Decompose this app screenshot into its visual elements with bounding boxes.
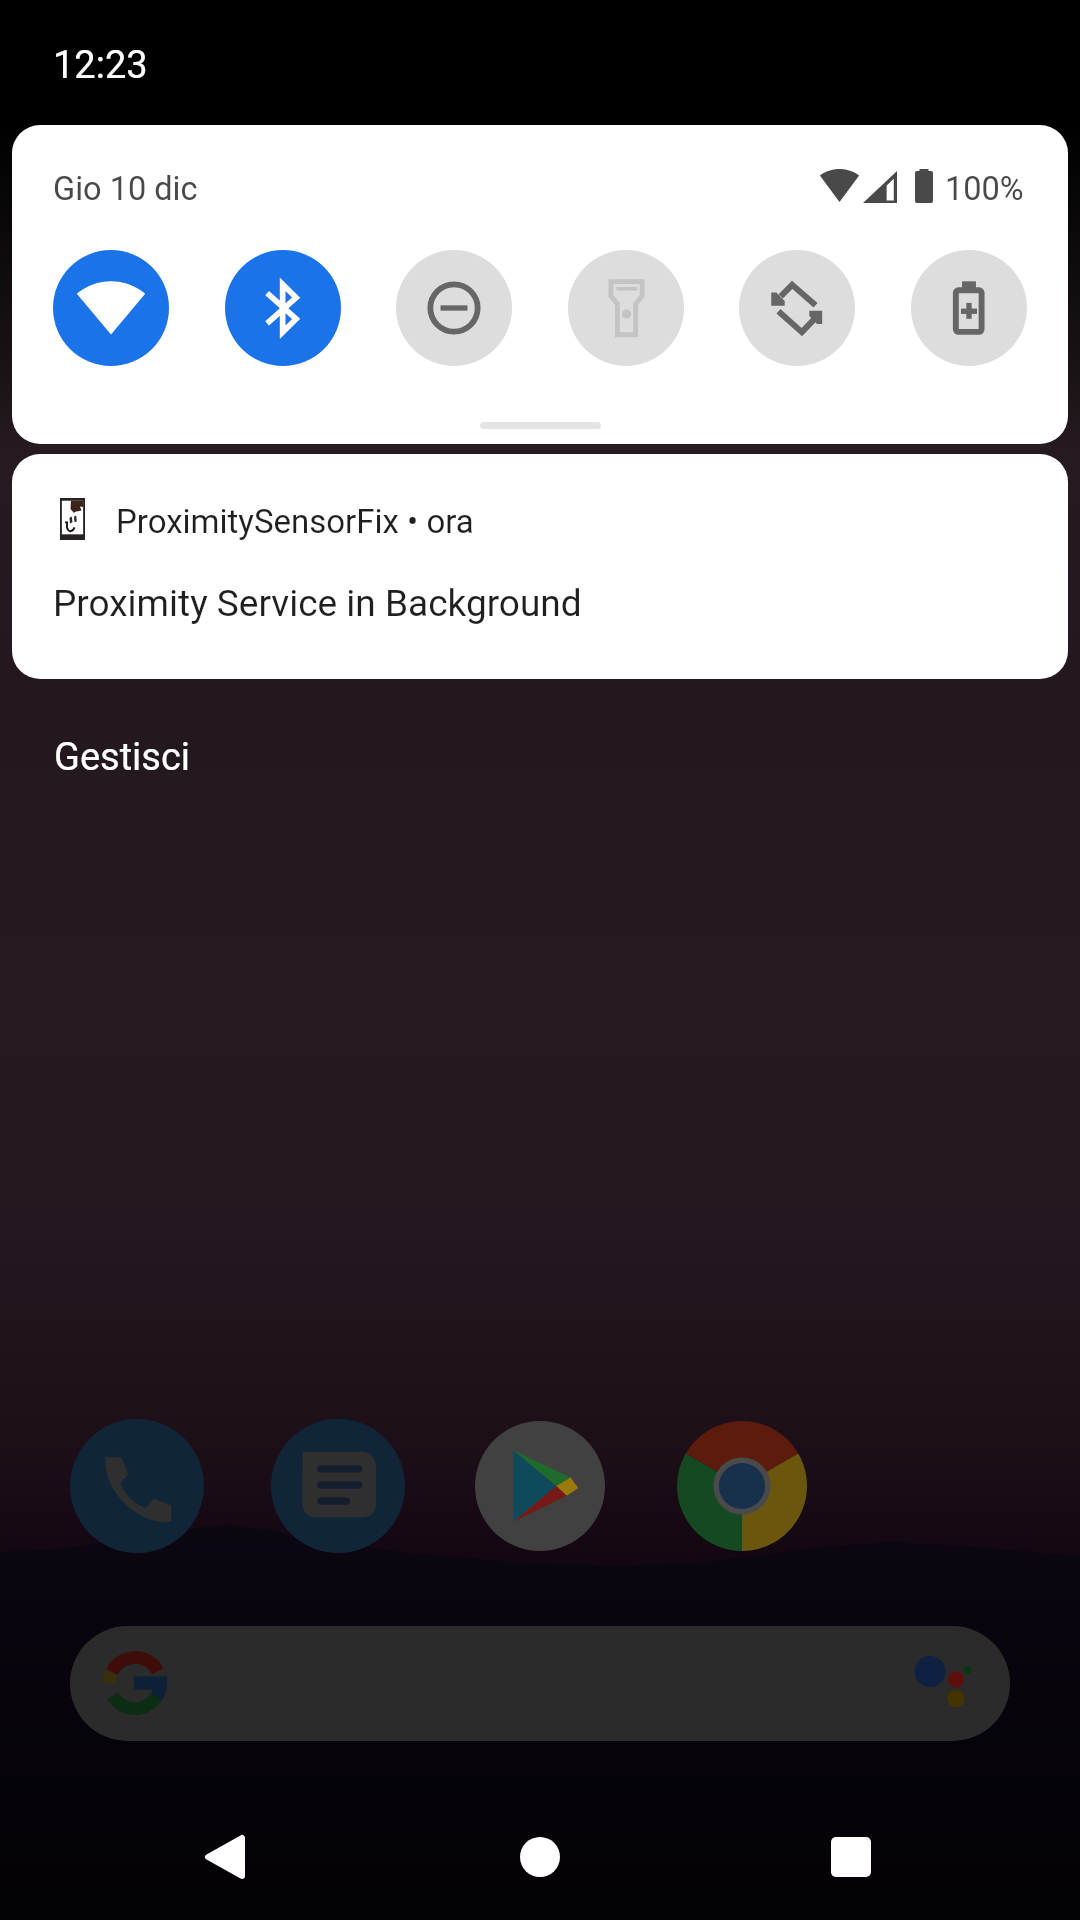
staticText: 100% xyxy=(945,170,1024,208)
staticText: 12:23 xyxy=(53,43,148,88)
button[interactable]: Wi-Fi xyxy=(53,250,169,366)
button[interactable]: Recent apps xyxy=(781,1787,921,1920)
staticText: ProximitySensorFix • ora xyxy=(116,502,474,541)
staticText: Proximity Service in Background xyxy=(53,582,582,625)
button[interactable]: Do not disturb xyxy=(396,250,512,366)
staticText: Gio 10 dic xyxy=(53,170,198,208)
button[interactable]: Auto-rotate xyxy=(739,250,855,366)
button[interactable]: Back xyxy=(155,1787,295,1920)
button[interactable]: ProximitySensorFix • ora xyxy=(12,454,1068,679)
button[interactable]: Gestisci xyxy=(54,735,191,780)
button[interactable]: Battery saver xyxy=(911,250,1027,366)
button[interactable]: Home xyxy=(470,1787,610,1920)
button[interactable]: Flashlight xyxy=(568,250,684,366)
button[interactable]: Bluetooth xyxy=(225,250,341,366)
